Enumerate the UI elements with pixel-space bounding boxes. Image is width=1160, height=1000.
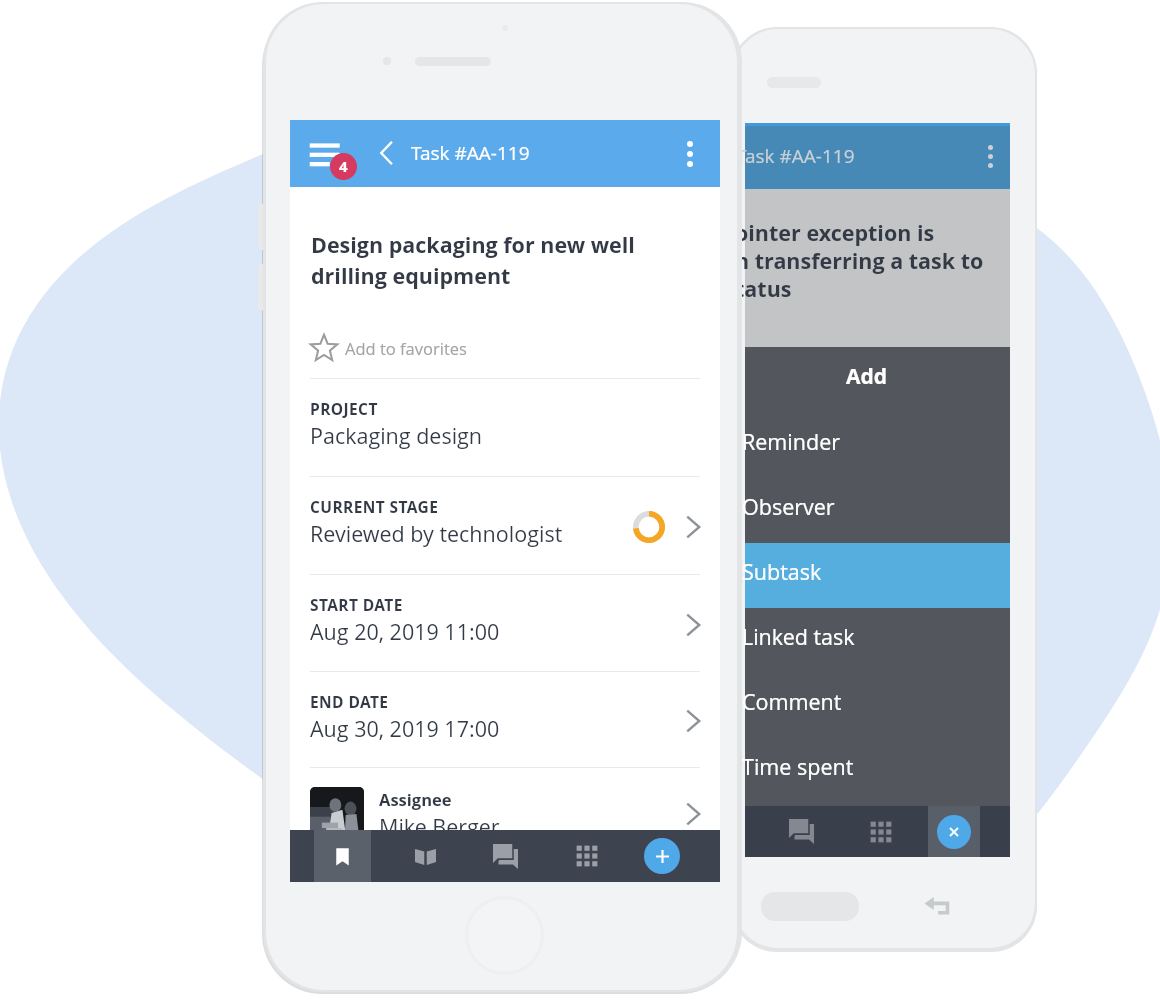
button[interactable]: Subtask [745,543,1010,608]
button[interactable]: More [546,830,627,882]
button[interactable]: Close [937,815,971,849]
button[interactable]: Add to favorites [310,329,510,367]
staticText: Add [846,362,888,391]
staticText: START DATE [310,594,403,615]
button[interactable]: Comment [745,673,1010,738]
staticText: CURRENT STAGE [310,496,439,517]
staticText: Task #AA-119 [411,140,530,166]
staticText: Aug 20, 2019 11:00 [310,617,500,646]
button[interactable]: Comments [465,830,546,882]
button[interactable]: Comments [761,806,842,857]
button[interactable]: Add [644,838,680,874]
staticText: Subtask [742,557,822,586]
staticText: Add to favorites [345,337,467,359]
staticText: Assignee [379,788,452,810]
staticText: Comment [742,687,842,716]
staticText: Packaging design [310,421,483,450]
button[interactable]: More options [668,132,712,176]
button[interactable]: Description [385,830,466,882]
staticText: PROJECT [310,398,378,419]
button[interactable]: PROJECT [290,378,720,476]
button[interactable]: START DATE [290,574,720,671]
staticText: Design packaging for new well drilling e… [311,230,661,290]
button[interactable]: Back [369,134,407,172]
button[interactable]: Reminder [745,413,1010,478]
staticText: Linked task [742,622,855,651]
staticText: ointer exception is n transferring a tas… [735,218,984,304]
button[interactable]: Menu [298,130,360,192]
button[interactable]: More [841,806,921,857]
button[interactable]: Observer [745,478,1010,543]
button[interactable]: Time spent [745,738,1010,803]
staticText: Reviewed by technologist [310,519,563,548]
staticText: Mike Berger [379,812,500,841]
staticText: Observer [742,492,835,521]
button[interactable]: CURRENT STAGE [290,476,720,574]
button[interactable]: Task details [314,830,371,882]
staticText: Reminder [742,427,840,456]
staticText: 4 [339,156,348,176]
staticText: Aug 30, 2019 17:00 [310,714,500,743]
staticText: Time spent [742,752,854,781]
button[interactable]: Linked task [745,608,1010,673]
button[interactable]: END DATE [290,671,720,767]
staticText: END DATE [310,691,389,712]
staticText: Task #AA-119 [736,143,855,169]
button[interactable]: Assignee [290,767,720,882]
